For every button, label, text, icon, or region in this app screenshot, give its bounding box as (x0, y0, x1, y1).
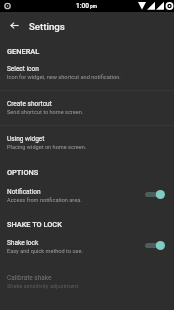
staticText: 1:00 (76, 2, 89, 10)
staticText: Easy and quick method to use. (7, 248, 83, 255)
staticText: pm (90, 4, 97, 10)
button[interactable]: Create shortcut (0, 92, 174, 127)
staticText: Send shortcut to home screen. (7, 109, 84, 116)
button[interactable]: Shake lock (0, 231, 174, 266)
staticText: Settings (29, 21, 65, 32)
staticText: Shake sensitivity adjustment. (7, 283, 80, 290)
staticText: Create shortcut (7, 100, 52, 108)
staticText: Shake lock (7, 239, 39, 247)
staticText: Access from notification area. (7, 197, 82, 204)
staticText: Using widget (7, 135, 45, 143)
button[interactable]: Navigate back (3, 14, 25, 36)
staticText: SHAKE TO LOCK (7, 220, 62, 229)
button[interactable]: Calibrate shake (0, 266, 174, 301)
button[interactable]: Notification switch (145, 188, 165, 201)
staticText: Select icon (7, 65, 39, 73)
button[interactable]: Using widget (0, 127, 174, 162)
staticText: Placing widget on home screen. (7, 144, 87, 151)
staticText: Icon for widget, new shortcut and notifi… (7, 74, 121, 81)
button[interactable]: Shake lock switch (145, 239, 165, 252)
button[interactable]: Select icon (0, 57, 174, 92)
staticText: OPTIONS (7, 168, 39, 177)
staticText: Notification (7, 188, 41, 196)
button[interactable]: Notification (0, 180, 174, 215)
staticText: GENERAL (7, 47, 40, 56)
staticText: Calibrate shake (7, 274, 52, 282)
